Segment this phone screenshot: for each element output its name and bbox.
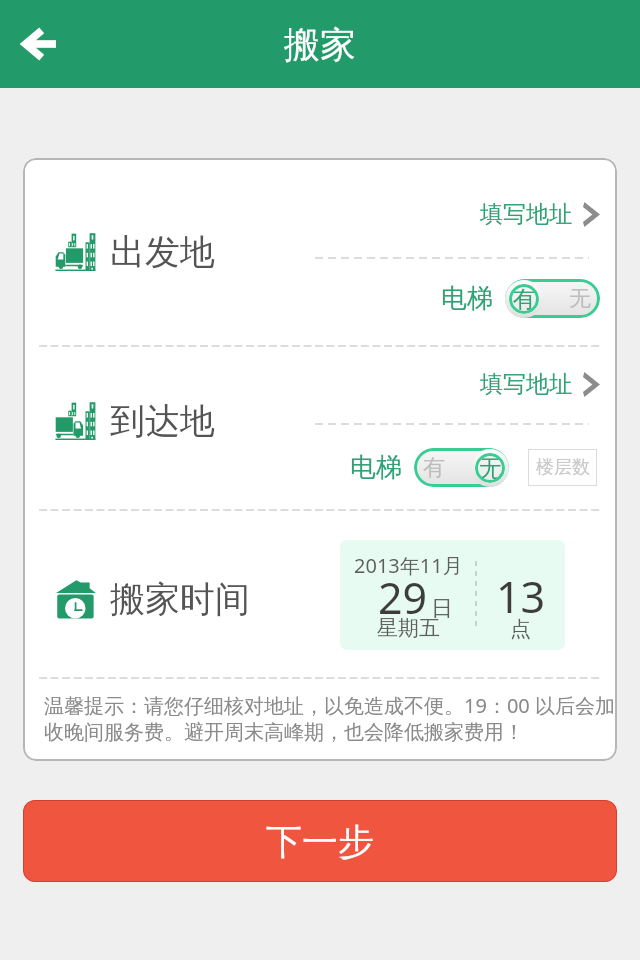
button[interactable]: Back xyxy=(7,12,71,76)
button[interactable]: 下一步 xyxy=(23,800,617,882)
staticText: 下一步 xyxy=(266,819,374,864)
button[interactable]: 填写地址 xyxy=(480,200,600,229)
staticText: 出发地 xyxy=(110,230,215,274)
staticText: 有 xyxy=(423,454,445,482)
staticText: 温馨提示：请您仔细核对地址，以免造成不便。19：00 以后会加收晚间服务费。避开… xyxy=(44,692,617,745)
button[interactable]: 楼层数 xyxy=(528,449,597,486)
staticText: 无 xyxy=(569,285,591,313)
staticText: 电梯 xyxy=(441,282,493,315)
staticText: 13 xyxy=(496,567,546,626)
staticText: 点 xyxy=(510,616,531,642)
staticText: 搬家时间 xyxy=(110,577,250,621)
staticText: 填写地址 xyxy=(480,370,572,399)
button[interactable]: 有 xyxy=(414,448,509,487)
staticText: 填写地址 xyxy=(480,200,572,229)
staticText: 星期五 xyxy=(377,615,440,641)
staticText: 电梯 xyxy=(350,451,402,484)
staticText: 29 xyxy=(378,568,428,627)
staticText: 无 xyxy=(479,454,502,483)
staticText: 到达地 xyxy=(110,399,215,443)
staticText: 日 xyxy=(431,595,453,623)
button[interactable]: 2013年11月 xyxy=(340,540,565,650)
button[interactable]: 填写地址 xyxy=(480,370,600,399)
staticText: 楼层数 xyxy=(536,456,590,479)
button[interactable]: 无 xyxy=(505,279,600,318)
staticText: 2013年11月 xyxy=(354,552,463,579)
staticText: 搬家 xyxy=(284,22,356,67)
staticText: 有 xyxy=(513,285,536,314)
